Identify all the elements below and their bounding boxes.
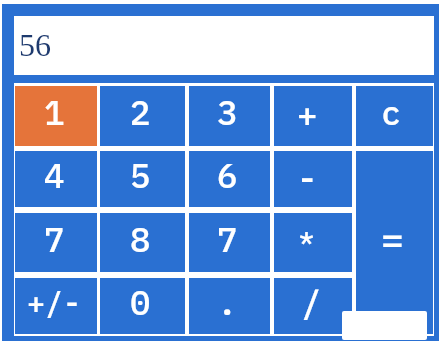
- staticText: .: [217, 280, 238, 324]
- button[interactable]: 8: [100, 213, 185, 272]
- staticText: 4: [44, 153, 65, 197]
- button[interactable]: 6: [189, 151, 270, 207]
- button[interactable]: 7: [189, 213, 270, 272]
- staticText: 7: [44, 217, 65, 261]
- button[interactable]: 7: [15, 213, 97, 272]
- button[interactable]: 0: [100, 278, 185, 334]
- button[interactable]: +/-: [15, 278, 97, 334]
- staticText: =: [381, 214, 404, 263]
- staticText: /: [301, 280, 322, 324]
- button[interactable]: =: [356, 151, 433, 334]
- staticText: -: [297, 156, 318, 200]
- button[interactable]: *: [274, 213, 352, 272]
- staticText: *: [299, 220, 315, 253]
- button[interactable]: 3: [189, 86, 270, 146]
- button[interactable]: 56: [14, 16, 434, 75]
- button[interactable]: .: [189, 278, 270, 334]
- staticText: 0: [130, 280, 151, 324]
- staticText: 6: [217, 153, 238, 197]
- staticText: 56: [19, 27, 51, 62]
- staticText: 3: [217, 90, 238, 134]
- staticText: +: [297, 92, 318, 136]
- staticText: 5: [130, 153, 151, 197]
- button[interactable]: 2: [100, 86, 185, 146]
- button[interactable]: /: [274, 278, 352, 334]
- staticText: c: [381, 90, 402, 134]
- button[interactable]: +: [274, 86, 352, 146]
- button[interactable]: 5: [100, 151, 185, 207]
- staticText: +/-: [27, 283, 81, 322]
- staticText: 1: [44, 90, 65, 134]
- staticText: 7: [217, 217, 238, 261]
- button[interactable]: 1: [15, 86, 97, 146]
- staticText: 2: [130, 90, 151, 134]
- staticText: 8: [130, 217, 151, 261]
- button[interactable]: -: [274, 151, 352, 207]
- button[interactable]: c: [356, 86, 433, 146]
- button[interactable]: 4: [15, 151, 97, 207]
